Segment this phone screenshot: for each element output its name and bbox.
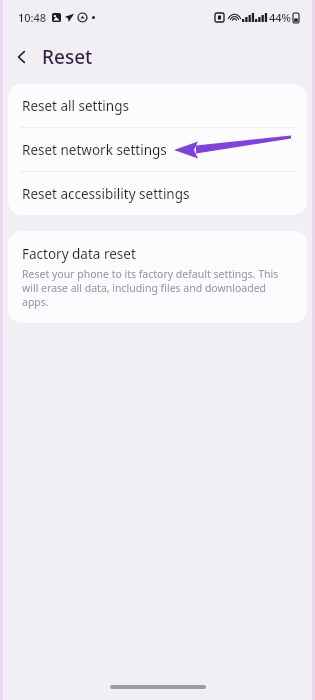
staticText: 44%: [269, 10, 291, 25]
staticText: Reset accessibility settings: [22, 185, 190, 203]
staticText: Factory data reset: [22, 245, 136, 263]
button[interactable]: Back: [8, 43, 36, 71]
button[interactable]: Factory data reset: [8, 231, 307, 323]
staticText: 10:48: [18, 10, 47, 25]
staticText: Reset your phone to its factory default …: [22, 267, 293, 309]
staticText: Reset all settings: [22, 97, 129, 115]
button[interactable]: Reset network settings: [8, 128, 307, 171]
staticText: Reset: [42, 44, 93, 70]
staticText: Reset network settings: [22, 141, 167, 159]
button[interactable]: Reset all settings: [8, 84, 307, 127]
button[interactable]: Reset accessibility settings: [8, 172, 307, 215]
